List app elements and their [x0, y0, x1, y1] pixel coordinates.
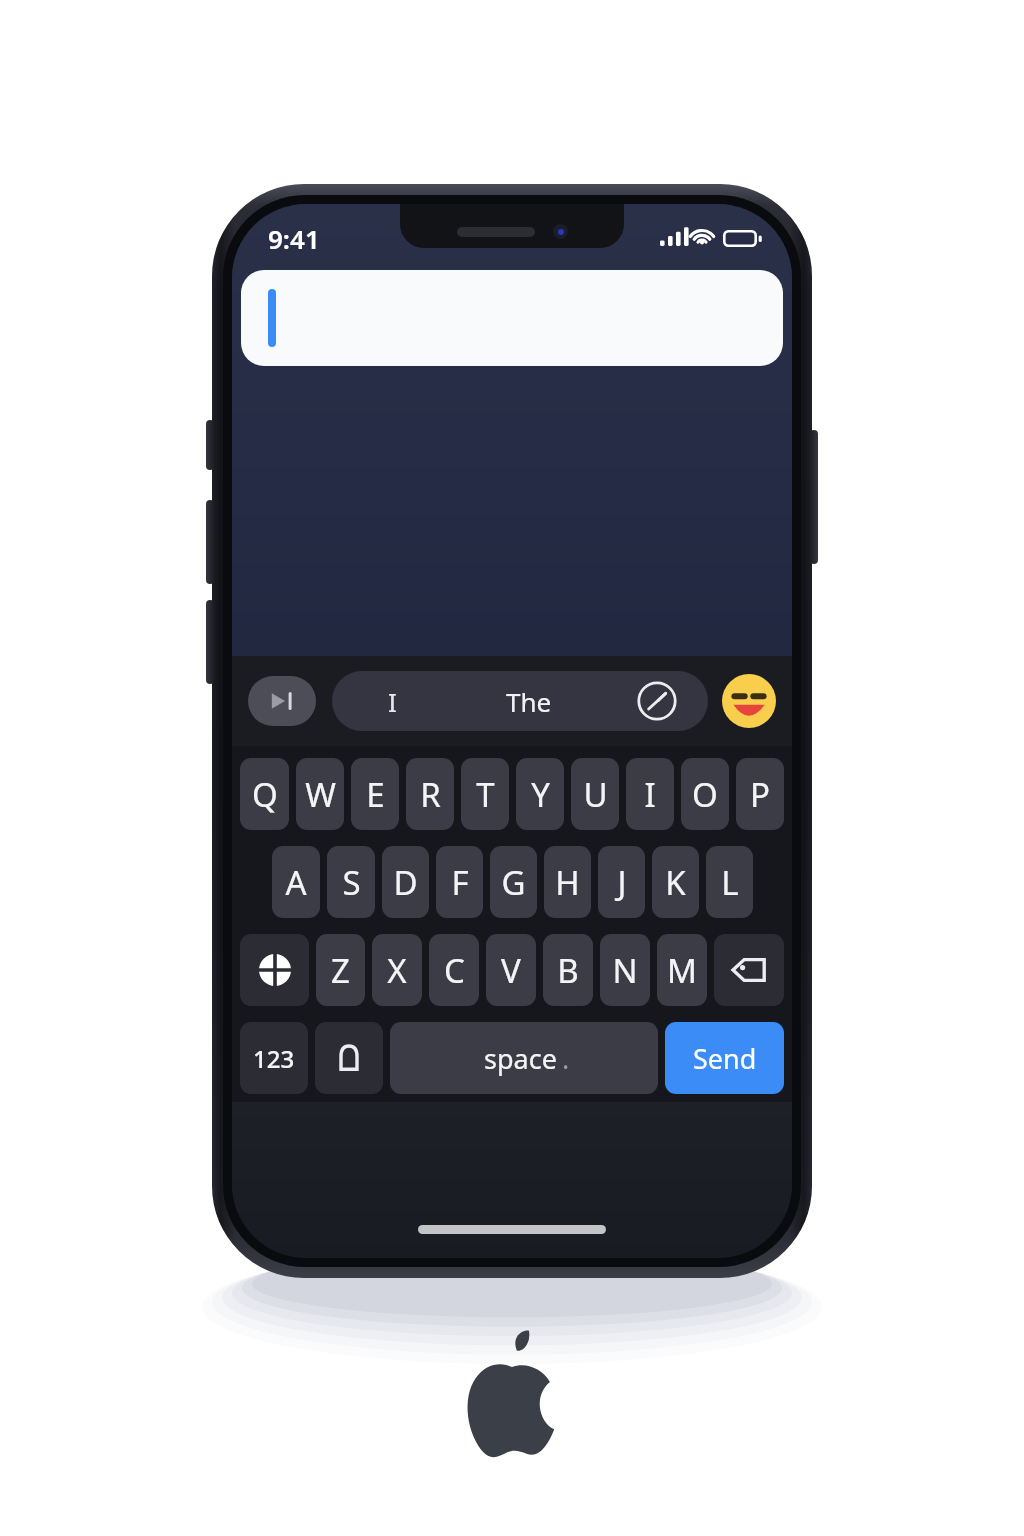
button[interactable]: I: [332, 671, 452, 731]
button[interactable]: K: [652, 846, 699, 918]
staticText: L: [721, 860, 739, 905]
button[interactable]: P: [736, 758, 784, 830]
button[interactable]: J: [598, 846, 645, 918]
staticText: Z: [331, 948, 350, 993]
button[interactable]: The: [452, 671, 606, 731]
button[interactable]: T: [461, 758, 509, 830]
staticText: space: [484, 1040, 557, 1077]
button[interactable]: N: [600, 934, 650, 1006]
staticText: Q: [252, 772, 278, 817]
staticText: M: [667, 948, 697, 993]
button[interactable]: E: [351, 758, 399, 830]
other: Volume up: [206, 500, 214, 584]
button[interactable]: U: [571, 758, 619, 830]
staticText: 9:41: [268, 221, 320, 256]
button[interactable]: Q: [240, 758, 289, 830]
other: Side button: [810, 430, 818, 564]
button[interactable]: D: [382, 846, 429, 918]
button[interactable]: Switch keyboard: [315, 1022, 383, 1094]
staticText: Y: [531, 772, 550, 817]
button[interactable]: L: [706, 846, 753, 918]
staticText: A: [285, 860, 307, 905]
staticText: K: [665, 860, 686, 905]
button[interactable]: Send: [665, 1022, 784, 1094]
button[interactable]: G: [490, 846, 537, 918]
button[interactable]: A: [272, 846, 320, 918]
staticText: F: [451, 860, 469, 905]
staticText: I: [644, 772, 656, 817]
staticText: V: [501, 948, 521, 993]
staticText: T: [476, 772, 495, 817]
button[interactable]: 123: [240, 1022, 308, 1094]
button[interactable]: H: [544, 846, 591, 918]
staticText: C: [444, 948, 465, 993]
button[interactable]: F: [436, 846, 483, 918]
button[interactable]: Paste: [248, 676, 316, 726]
staticText: O: [692, 772, 718, 817]
button[interactable]: [241, 270, 783, 366]
button[interactable]: Shift: [240, 934, 309, 1006]
staticText: E: [366, 772, 385, 817]
other: Volume down: [206, 600, 214, 684]
staticText: G: [501, 860, 526, 905]
staticText: H: [555, 860, 580, 905]
staticText: X: [387, 948, 407, 993]
button[interactable]: space: [390, 1022, 658, 1094]
staticText: Send: [693, 1040, 757, 1077]
button[interactable]: Backspace: [714, 934, 784, 1006]
button[interactable]: Emoji: [722, 674, 776, 728]
button[interactable]: Y: [516, 758, 564, 830]
button[interactable]: B: [543, 934, 593, 1006]
staticText: U: [583, 772, 608, 817]
staticText: D: [393, 860, 418, 905]
staticText: R: [420, 772, 441, 817]
staticText: .: [562, 1040, 570, 1077]
button[interactable]: M: [657, 934, 707, 1006]
button[interactable]: O: [681, 758, 729, 830]
staticText: S: [342, 860, 361, 905]
button[interactable]: W: [296, 758, 344, 830]
staticText: W: [305, 772, 336, 817]
button[interactable]: V: [486, 934, 536, 1006]
staticText: The: [506, 684, 552, 719]
button[interactable]: X: [372, 934, 422, 1006]
button[interactable]: Z: [316, 934, 365, 1006]
button[interactable]: S: [327, 846, 375, 918]
staticText: B: [557, 948, 579, 993]
button[interactable]: I: [626, 758, 674, 830]
staticText: 123: [253, 1042, 295, 1075]
staticText: N: [612, 948, 638, 993]
button[interactable]: R: [406, 758, 454, 830]
staticText: J: [617, 860, 627, 905]
other: Mute switch: [206, 420, 214, 470]
button[interactable]: Dictation: [606, 671, 708, 731]
staticText: P: [750, 772, 770, 817]
button[interactable]: C: [429, 934, 479, 1006]
staticText: I: [388, 684, 397, 719]
